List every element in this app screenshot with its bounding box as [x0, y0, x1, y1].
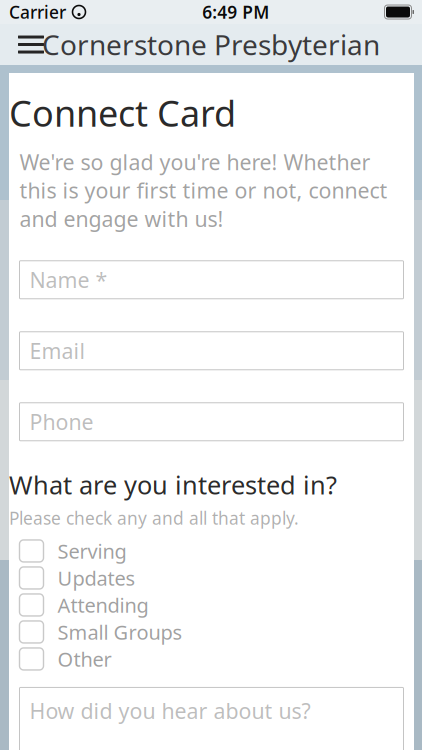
button[interactable]: Menu — [8, 24, 54, 65]
button[interactable]: How did you hear about us? — [19, 687, 403, 750]
staticText: Carrier — [9, 0, 66, 23]
button[interactable]: Email — [19, 332, 403, 370]
button[interactable]: Serving — [19, 537, 403, 564]
staticText: Name * — [29, 266, 107, 294]
button[interactable]: Name * — [19, 261, 403, 299]
button[interactable]: Phone — [19, 403, 403, 441]
staticText: 6:49 PM — [202, 0, 269, 23]
staticText: Phone — [29, 408, 93, 436]
button[interactable]: Updates — [19, 564, 403, 591]
staticText: Updates — [57, 565, 135, 591]
staticText: Please check any and all that apply. — [9, 506, 299, 529]
staticText: How did you hear about us? — [29, 696, 310, 725]
button[interactable]: Other — [19, 645, 403, 672]
button[interactable]: Small Groups — [19, 618, 403, 645]
staticText: Small Groups — [57, 619, 182, 645]
staticText: Other — [57, 646, 111, 672]
staticText: Cornerstone Presbyterian — [42, 26, 380, 63]
staticText: We're so glad you're here! Whether this … — [19, 148, 387, 233]
staticText: Serving — [57, 538, 126, 564]
staticText: Email — [29, 337, 85, 365]
staticText: Attending — [57, 592, 148, 618]
staticText: Connect Card — [9, 89, 236, 137]
staticText: What are you interested in? — [9, 468, 337, 501]
button[interactable]: Attending — [19, 591, 403, 618]
